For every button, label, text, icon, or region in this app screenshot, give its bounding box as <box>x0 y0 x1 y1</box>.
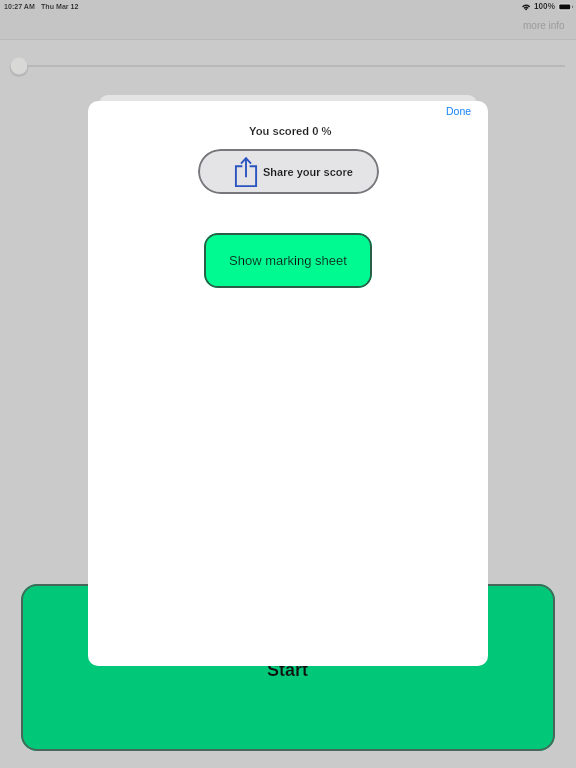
other: Progress slider <box>0 52 576 80</box>
other: Share <box>235 157 257 187</box>
button[interactable]: more info <box>523 20 576 31</box>
button[interactable]: Done <box>438 101 480 121</box>
staticText: 100% <box>534 2 555 11</box>
button[interactable]: Share <box>198 149 379 194</box>
other: Battery 100 percent <box>558 3 573 11</box>
other: Wi-Fi <box>521 3 530 10</box>
staticText: 10:27 AM <box>4 3 35 11</box>
staticText: You scored 0 % <box>249 125 332 138</box>
button[interactable]: Start <box>21 584 555 751</box>
staticText: Done <box>446 105 472 117</box>
button[interactable]: Show marking sheet <box>204 233 372 288</box>
staticText: Show marking sheet <box>229 253 347 268</box>
staticText: Thu Mar 12 <box>41 3 79 11</box>
staticText: Share your score <box>263 166 353 178</box>
staticText: Start <box>267 660 309 680</box>
